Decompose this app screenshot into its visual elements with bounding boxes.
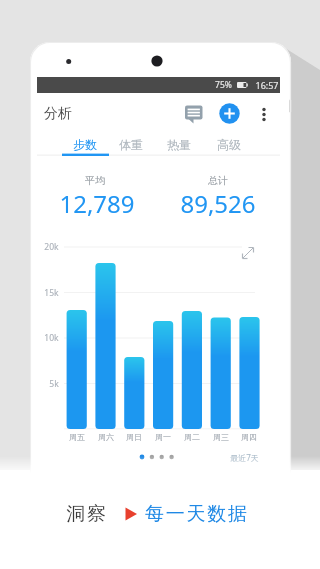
staticText: 周六 bbox=[98, 432, 114, 442]
button[interactable] bbox=[219, 103, 240, 124]
staticText: 15k bbox=[44, 287, 59, 299]
staticText: 12,789 bbox=[59, 187, 135, 220]
button[interactable] bbox=[206, 133, 252, 155]
staticText: 周三 bbox=[213, 432, 229, 442]
staticText: 16:57 bbox=[255, 79, 279, 91]
button[interactable] bbox=[183, 103, 205, 125]
staticText: 最近7天 bbox=[230, 452, 259, 463]
staticText: 分析 bbox=[44, 105, 72, 123]
staticText: 5k bbox=[49, 378, 59, 390]
staticText: 高级 bbox=[217, 137, 241, 152]
staticText: 周日 bbox=[126, 432, 142, 442]
staticText: 总计 bbox=[208, 174, 228, 187]
button[interactable] bbox=[156, 133, 202, 155]
staticText: 75% bbox=[215, 79, 232, 91]
staticText: 体重 bbox=[119, 137, 143, 152]
staticText: 平均 bbox=[85, 174, 105, 187]
button[interactable] bbox=[256, 103, 272, 125]
button[interactable] bbox=[108, 133, 154, 155]
staticText: 10k bbox=[44, 332, 59, 344]
button[interactable] bbox=[60, 498, 260, 530]
staticText: 周四 bbox=[241, 432, 257, 442]
staticText: 周五 bbox=[69, 432, 85, 442]
staticText: 周二 bbox=[184, 432, 200, 442]
staticText: 周一 bbox=[155, 432, 171, 442]
staticText: 20k bbox=[44, 241, 59, 253]
staticText: 89,526 bbox=[180, 187, 256, 220]
staticText: 热量 bbox=[167, 137, 191, 152]
staticText: 步数 bbox=[73, 137, 97, 152]
button[interactable] bbox=[62, 133, 108, 155]
staticText: 洞察 bbox=[66, 502, 108, 526]
staticText: 每一天数据 bbox=[144, 502, 248, 526]
